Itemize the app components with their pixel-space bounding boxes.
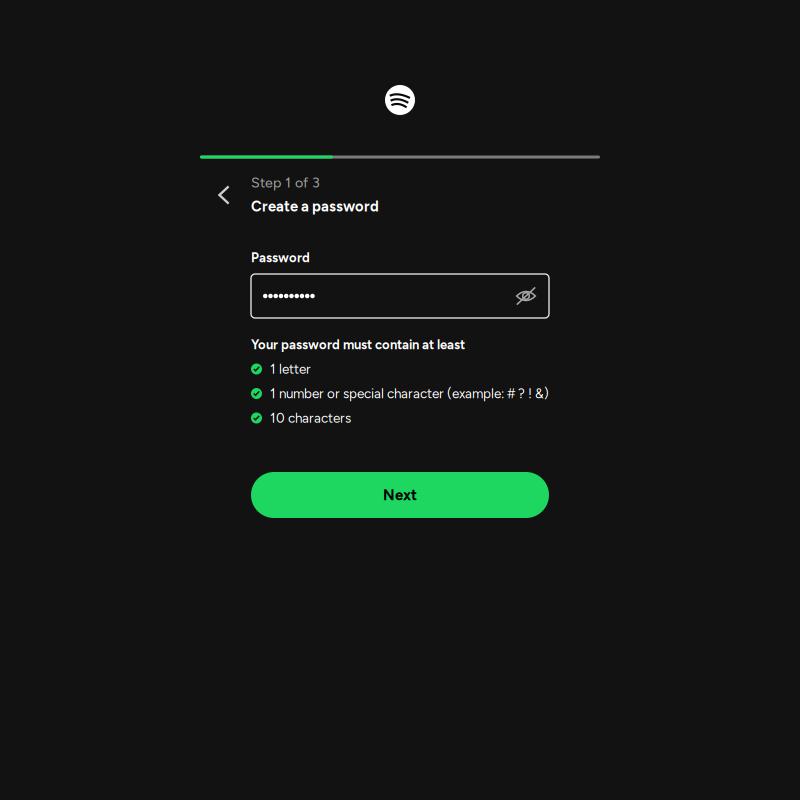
staticText: Next	[383, 486, 417, 504]
staticText: Your password must contain at least	[251, 337, 465, 353]
staticText: Step 1 of 3	[251, 174, 320, 191]
staticText: Password	[251, 250, 310, 266]
staticText: 1 letter	[270, 361, 311, 377]
button[interactable]: Password	[251, 274, 549, 318]
button[interactable]: Back	[204, 175, 244, 215]
button[interactable]: Hide password	[515, 286, 537, 306]
staticText: 10 characters	[270, 410, 351, 426]
button[interactable]: Next	[251, 472, 549, 518]
staticText: Create a password	[251, 197, 379, 215]
staticText: 1 number or special character (example: …	[270, 385, 549, 402]
